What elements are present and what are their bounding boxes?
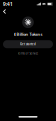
button[interactable]: Get started <box>3 40 53 48</box>
staticText: Get started <box>20 42 36 46</box>
button[interactable]: Back <box>1 8 8 15</box>
button[interactable]: Terms of Service <box>17 52 38 55</box>
staticText: 9:41 <box>3 0 13 8</box>
staticText: Terms of Service <box>17 52 38 55</box>
staticText: 4 Billion Tokens <box>13 31 42 37</box>
